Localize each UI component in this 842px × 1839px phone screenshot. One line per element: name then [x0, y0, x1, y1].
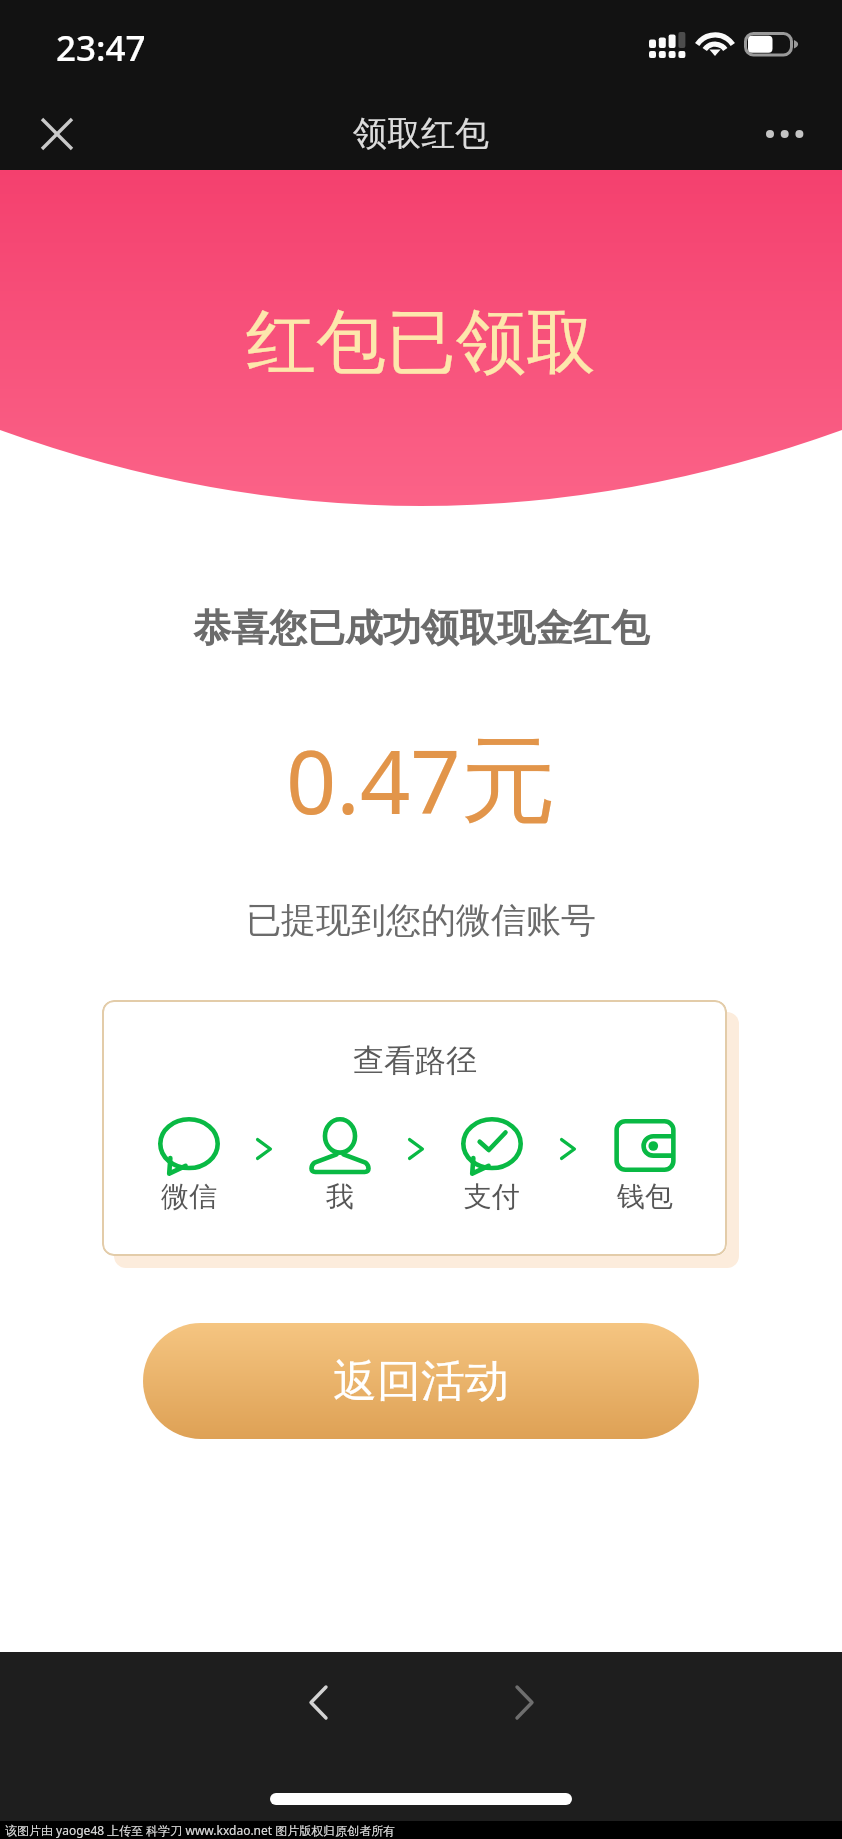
staticText: 已提现到您的微信账号: [0, 898, 842, 942]
staticText: 微信: [161, 1179, 217, 1214]
button[interactable]: 我: [280, 1117, 400, 1214]
staticText: 元: [461, 722, 556, 842]
button[interactable]: Forward: [484, 1662, 564, 1742]
staticText: 返回活动: [333, 1354, 509, 1409]
button[interactable]: 返回活动: [143, 1323, 699, 1439]
staticText: 钱包: [617, 1179, 673, 1214]
button[interactable]: 微信: [129, 1117, 249, 1214]
staticText: 23:47: [56, 24, 146, 72]
staticText: 领取红包: [353, 112, 489, 155]
staticText: 0.47: [286, 720, 461, 840]
staticText: 红包已领取: [246, 299, 596, 387]
staticText: 查看路径: [353, 1041, 477, 1080]
button[interactable]: Close: [27, 104, 87, 164]
staticText: 恭喜您已成功领取现金红包: [0, 604, 842, 652]
staticText: 该图片由 yaoge48 上传至 科学刀 www.kxdao.net 图片版权归…: [5, 1822, 396, 1838]
staticText: 支付: [464, 1179, 520, 1214]
button[interactable]: More options: [755, 104, 815, 164]
button[interactable]: 钱包: [585, 1117, 705, 1214]
button[interactable]: Back: [278, 1662, 358, 1742]
button[interactable]: 支付: [432, 1117, 552, 1214]
staticText: 我: [326, 1179, 354, 1214]
